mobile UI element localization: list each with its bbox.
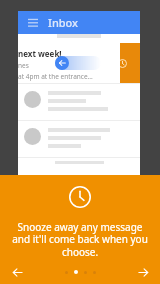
button[interactable]: Undo snooze: [55, 56, 69, 70]
button[interactable]: [93, 271, 96, 274]
button[interactable]: [18, 84, 140, 120]
button[interactable]: [18, 158, 140, 175]
button[interactable]: Open navigation menu: [18, 11, 140, 34]
button[interactable]: [84, 271, 87, 274]
button[interactable]: Snooze: [104, 43, 140, 83]
staticText: nes: [18, 61, 29, 70]
staticText: Inbox: [48, 15, 79, 30]
staticText: next week!: [18, 48, 62, 59]
staticText: Snooze away any message and it'll come b…: [10, 220, 150, 259]
button[interactable]: Next: [133, 262, 153, 282]
staticText: at 4pm at the entrance...: [18, 72, 93, 81]
button[interactable]: [65, 271, 68, 274]
button[interactable]: Previous: [7, 262, 27, 282]
button[interactable]: Open navigation menu: [26, 16, 40, 30]
button[interactable]: Snooze: [18, 43, 140, 83]
button[interactable]: [74, 270, 78, 274]
button[interactable]: [18, 121, 140, 157]
